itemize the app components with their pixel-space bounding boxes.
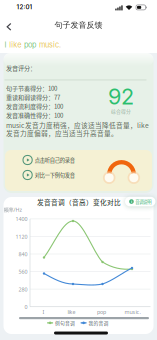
staticText: 例句音调: [55, 319, 75, 326]
staticText: like: [67, 308, 75, 315]
staticText: music 发音力度稍强，应该适当降低音量，like: [6, 120, 149, 130]
staticText: 560: [18, 268, 27, 275]
staticText: music.: [39, 40, 61, 49]
staticText: I: [43, 308, 45, 315]
staticText: 发音评分：: [6, 63, 36, 72]
button[interactable]: 播放自己的录音: [23, 155, 75, 164]
staticText: 12:01: [16, 3, 32, 11]
staticText: pop: [24, 40, 36, 49]
staticText: I: [4, 40, 6, 49]
staticText: 对比一下例句发音: [35, 171, 75, 179]
staticText: 频率/Hz: [3, 206, 22, 213]
staticText: 发音流利度得分：100: [6, 102, 63, 110]
staticText: 句子节奏得分：100: [6, 84, 57, 92]
staticText: pop: [97, 308, 106, 315]
staticText: 发音准确性得分：100: [6, 111, 63, 119]
staticText: 句子发音反馈: [54, 20, 102, 30]
staticText: 840: [18, 251, 27, 258]
staticText: 综合得分: [111, 108, 131, 115]
staticText: 1120: [15, 233, 27, 240]
staticText: 1400: [15, 215, 27, 223]
staticText: 0: [24, 303, 27, 311]
staticText: like: [9, 40, 21, 49]
staticText: music.: [124, 308, 140, 315]
staticText: 280: [18, 286, 27, 293]
staticText: 重读和弱读得分：77: [6, 93, 60, 101]
button[interactable]: 播放例句发音: [23, 170, 75, 179]
staticText: 音调说明: [135, 198, 151, 205]
button[interactable]: 音调说明: [125, 197, 155, 206]
staticText: 发音音调（音高）变化对比: [37, 197, 121, 207]
button[interactable]: Back: [0, 17, 18, 36]
staticText: i: [131, 199, 132, 204]
staticText: 92: [108, 83, 134, 110]
staticText: 发音力度偏弱，应当适当升高音量。: [6, 128, 118, 138]
staticText: 点击听自己的录音: [35, 156, 75, 164]
staticText: 我的音调: [88, 319, 108, 326]
